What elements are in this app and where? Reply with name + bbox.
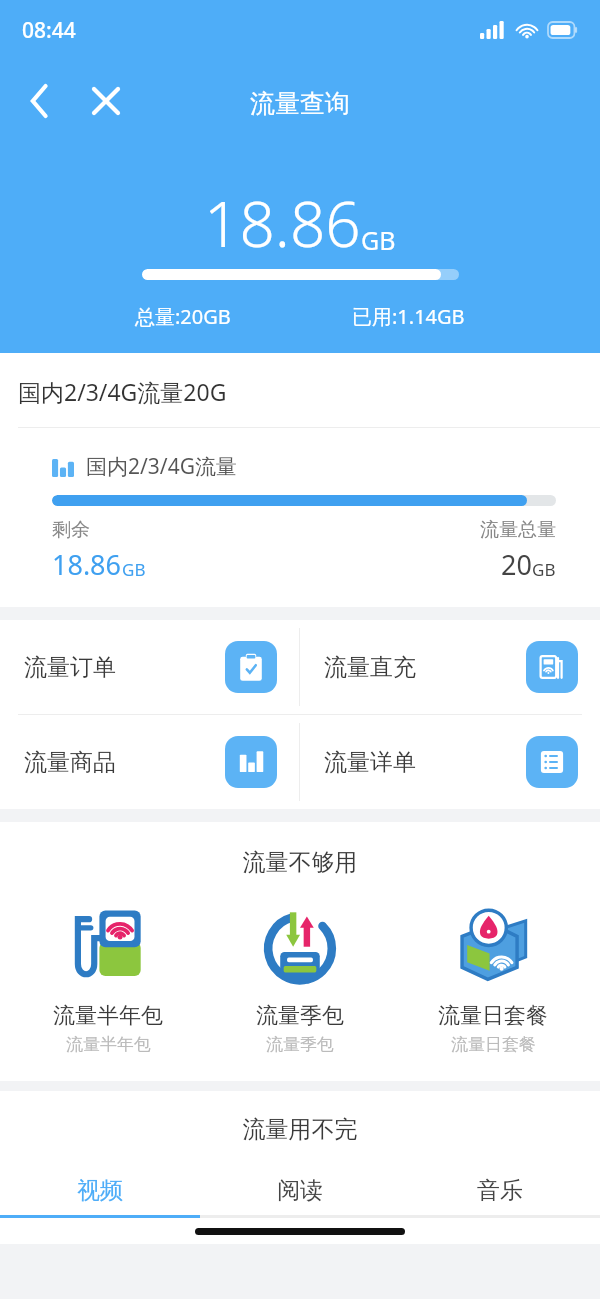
button[interactable]: 流量直充 bbox=[300, 620, 600, 714]
button[interactable]: 视频 bbox=[0, 1172, 200, 1209]
staticText: 剩余 bbox=[52, 518, 90, 542]
staticText: 阅读 bbox=[277, 1176, 323, 1205]
button[interactable]: 阅读 bbox=[200, 1172, 400, 1209]
staticText: 音乐 bbox=[477, 1176, 523, 1205]
button[interactable]: 流量详单 bbox=[300, 715, 600, 809]
button[interactable]: 流量商品 bbox=[0, 715, 299, 809]
staticText: 流量总量 bbox=[480, 518, 556, 542]
button[interactable]: 流量季包 bbox=[215, 897, 385, 1055]
staticText: 流量订单 bbox=[24, 653, 116, 682]
staticText: 视频 bbox=[77, 1176, 123, 1205]
button[interactable]: Close bbox=[78, 73, 134, 129]
staticText: 已用:1.14GB bbox=[352, 303, 465, 330]
staticText: 流量半年包 bbox=[53, 1002, 163, 1030]
button[interactable]: Back bbox=[12, 73, 68, 129]
staticText: 流量不够用 bbox=[0, 848, 600, 877]
staticText: 流量详单 bbox=[324, 748, 416, 777]
staticText: 流量季包 bbox=[266, 1034, 334, 1055]
staticText: GB bbox=[361, 223, 396, 257]
staticText: GB bbox=[122, 558, 146, 581]
staticText: 总量:20GB bbox=[135, 303, 231, 330]
staticText: 流量季包 bbox=[256, 1002, 344, 1030]
button[interactable]: 流量日套餐 bbox=[408, 897, 578, 1055]
button[interactable]: 流量半年包 bbox=[23, 897, 193, 1055]
staticText: 国内2/3/4G流量20G bbox=[18, 376, 227, 407]
button[interactable]: 音乐 bbox=[400, 1172, 600, 1209]
staticText: 流量日套餐 bbox=[451, 1034, 536, 1055]
staticText: GB bbox=[532, 558, 556, 581]
button[interactable]: 流量订单 bbox=[0, 620, 299, 714]
staticText: 流量商品 bbox=[24, 748, 116, 777]
staticText: 国内2/3/4G流量 bbox=[86, 452, 237, 481]
staticText: 18.86 bbox=[204, 181, 361, 265]
staticText: 08:44 bbox=[22, 16, 76, 45]
staticText: 流量用不完 bbox=[0, 1115, 600, 1144]
staticText: 流量直充 bbox=[324, 653, 416, 682]
staticText: 20 bbox=[501, 546, 532, 583]
staticText: 流量日套餐 bbox=[438, 1002, 548, 1030]
staticText: 流量半年包 bbox=[66, 1034, 151, 1055]
staticText: 18.86 bbox=[52, 546, 122, 583]
staticText: 流量查询 bbox=[250, 88, 350, 119]
